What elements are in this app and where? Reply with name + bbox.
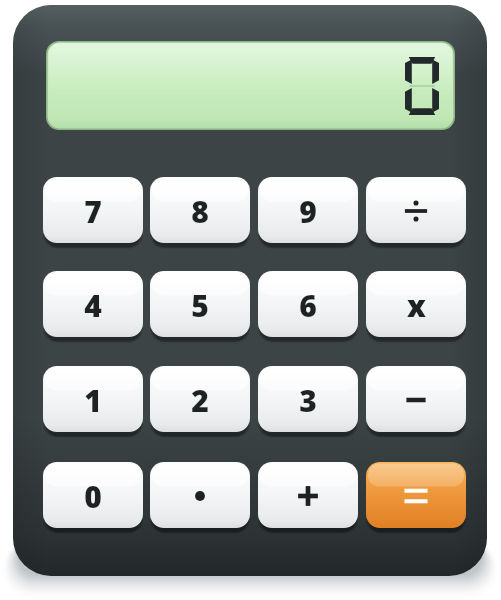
button[interactable]: 8 [150,177,250,245]
button[interactable]: Minus [366,366,466,434]
button[interactable]: 9 [258,177,358,245]
button[interactable]: 1 [43,366,143,434]
button[interactable]: 2 [150,366,250,434]
staticText: 2 [191,380,209,421]
button[interactable]: 6 [258,271,358,339]
staticText: 6 [299,285,317,326]
button[interactable]: Plus [258,462,358,530]
button[interactable]: 7 [43,177,143,245]
staticText: 9 [299,191,317,232]
button[interactable]: Divide [366,177,466,245]
staticText: 0 [84,476,102,517]
staticText: 1 [84,380,102,421]
button[interactable]: Decimal point [150,462,250,530]
button[interactable]: 3 [258,366,358,434]
button[interactable]: 5 [150,271,250,339]
other: Display shows 0 [405,57,439,115]
button[interactable]: 4 [43,271,143,339]
button[interactable]: Multiply [366,271,466,339]
staticText: 3 [299,380,317,421]
staticText: 4 [84,285,102,326]
staticText: x [407,285,426,326]
staticText: 8 [191,191,209,232]
staticText: 7 [84,191,102,232]
button[interactable]: 0 [43,462,143,530]
staticText: 5 [191,285,209,326]
button[interactable]: Equals [366,462,466,530]
